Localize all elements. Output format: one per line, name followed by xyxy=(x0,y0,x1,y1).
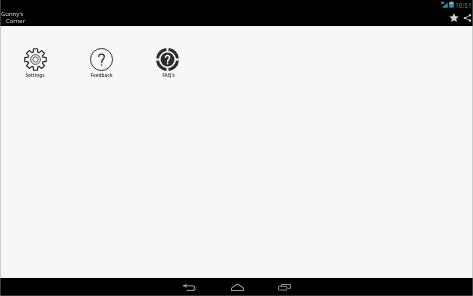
staticText: 10:51 xyxy=(455,1,472,10)
button[interactable]: Home xyxy=(215,278,259,296)
staticText: Settings xyxy=(25,72,45,78)
button[interactable]: FAQ's xyxy=(147,48,189,78)
button[interactable]: Settings xyxy=(14,48,56,78)
button[interactable]: Share xyxy=(461,10,473,26)
staticText: Feedback xyxy=(90,72,113,78)
staticText: Gunny's xyxy=(1,10,24,18)
staticText: FAQ's xyxy=(162,72,175,78)
staticText: Corner xyxy=(6,17,26,25)
button[interactable]: Recents xyxy=(262,278,306,296)
button[interactable]: Favorite xyxy=(445,10,462,26)
button[interactable]: Feedback xyxy=(80,48,122,78)
button[interactable]: Back xyxy=(167,278,211,296)
